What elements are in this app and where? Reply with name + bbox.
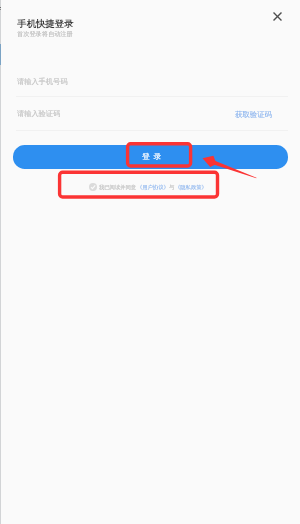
staticText: 《用户协议》 xyxy=(137,184,169,191)
staticText: 我已阅读并同意 xyxy=(99,184,137,191)
button[interactable]: 登录 xyxy=(13,145,288,169)
button[interactable]: Close xyxy=(266,5,288,27)
staticText: 请输入手机号码 xyxy=(17,77,68,86)
staticText: 请输入验证码 xyxy=(17,109,61,118)
staticText: 《隐私政策》 xyxy=(175,184,207,191)
staticText: 手机快捷登录 xyxy=(17,18,74,30)
button[interactable]: 获取验证码 xyxy=(231,106,276,123)
staticText: 与 xyxy=(169,184,175,191)
button[interactable]: 我已阅读并同意 xyxy=(89,183,207,191)
staticText: 首次登录将自动注册 xyxy=(17,30,73,38)
staticText: 获取验证码 xyxy=(235,110,272,119)
staticText: 登录 xyxy=(142,151,165,161)
